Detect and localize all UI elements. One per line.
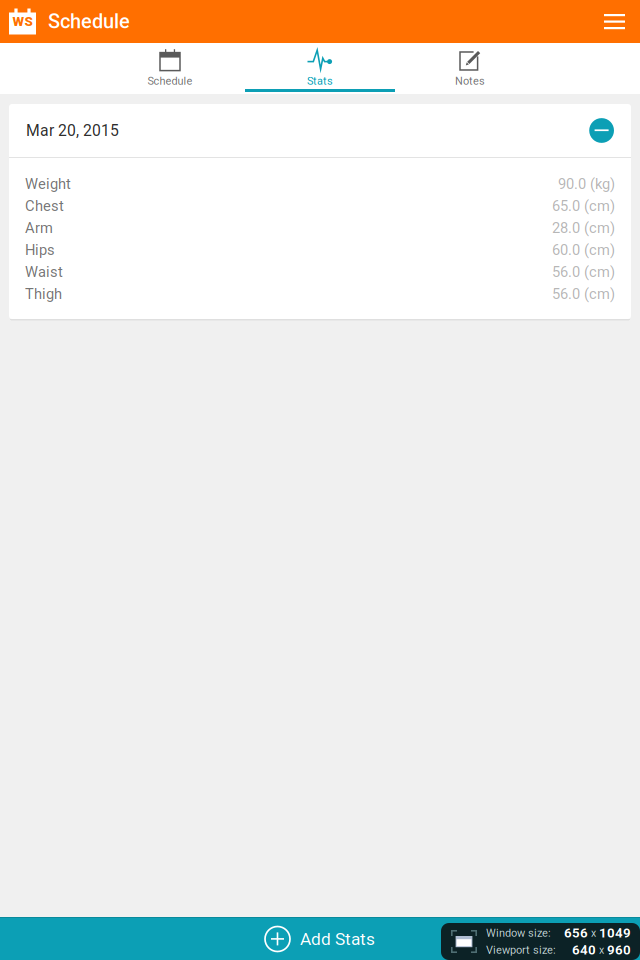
staticText: WS: [12, 14, 32, 29]
staticText: Viewport size:: [486, 944, 556, 956]
button[interactable]: Menu: [604, 0, 640, 43]
staticText: Add Stats: [300, 929, 375, 949]
staticText: 56.0 (cm): [552, 263, 615, 281]
staticText: Window size:: [486, 927, 551, 939]
staticText: Hips: [25, 241, 55, 259]
button[interactable]: Stats: [245, 43, 395, 94]
staticText: Arm: [25, 219, 53, 237]
staticText: 56.0 (cm): [552, 285, 615, 303]
staticText: 960: [607, 942, 631, 958]
button[interactable]: Collapse entry: [589, 118, 614, 143]
staticText: 656: [564, 925, 588, 941]
staticText: 640: [572, 942, 596, 958]
staticText: 60.0 (cm): [552, 241, 615, 259]
staticText: Notes: [455, 75, 485, 87]
staticText: Schedule: [147, 75, 192, 87]
staticText: Schedule: [48, 10, 130, 33]
button[interactable]: Notes: [395, 43, 545, 94]
staticText: 65.0 (cm): [552, 197, 615, 215]
staticText: 90.0 (kg): [558, 175, 615, 193]
staticText: Chest: [25, 197, 64, 215]
staticText: Thigh: [25, 285, 62, 303]
staticText: 28.0 (cm): [552, 219, 615, 237]
staticText: x: [588, 927, 599, 939]
staticText: Weight: [25, 175, 71, 193]
staticText: 1049: [599, 925, 631, 941]
button[interactable]: Add Stats: [0, 918, 640, 960]
staticText: Stats: [307, 75, 333, 87]
staticText: Waist: [25, 263, 63, 281]
staticText: Mar 20, 2015: [26, 121, 119, 140]
staticText: x: [596, 944, 607, 956]
button[interactable]: Schedule: [95, 43, 245, 94]
button[interactable]: Workout Schedule: [0, 0, 36, 43]
